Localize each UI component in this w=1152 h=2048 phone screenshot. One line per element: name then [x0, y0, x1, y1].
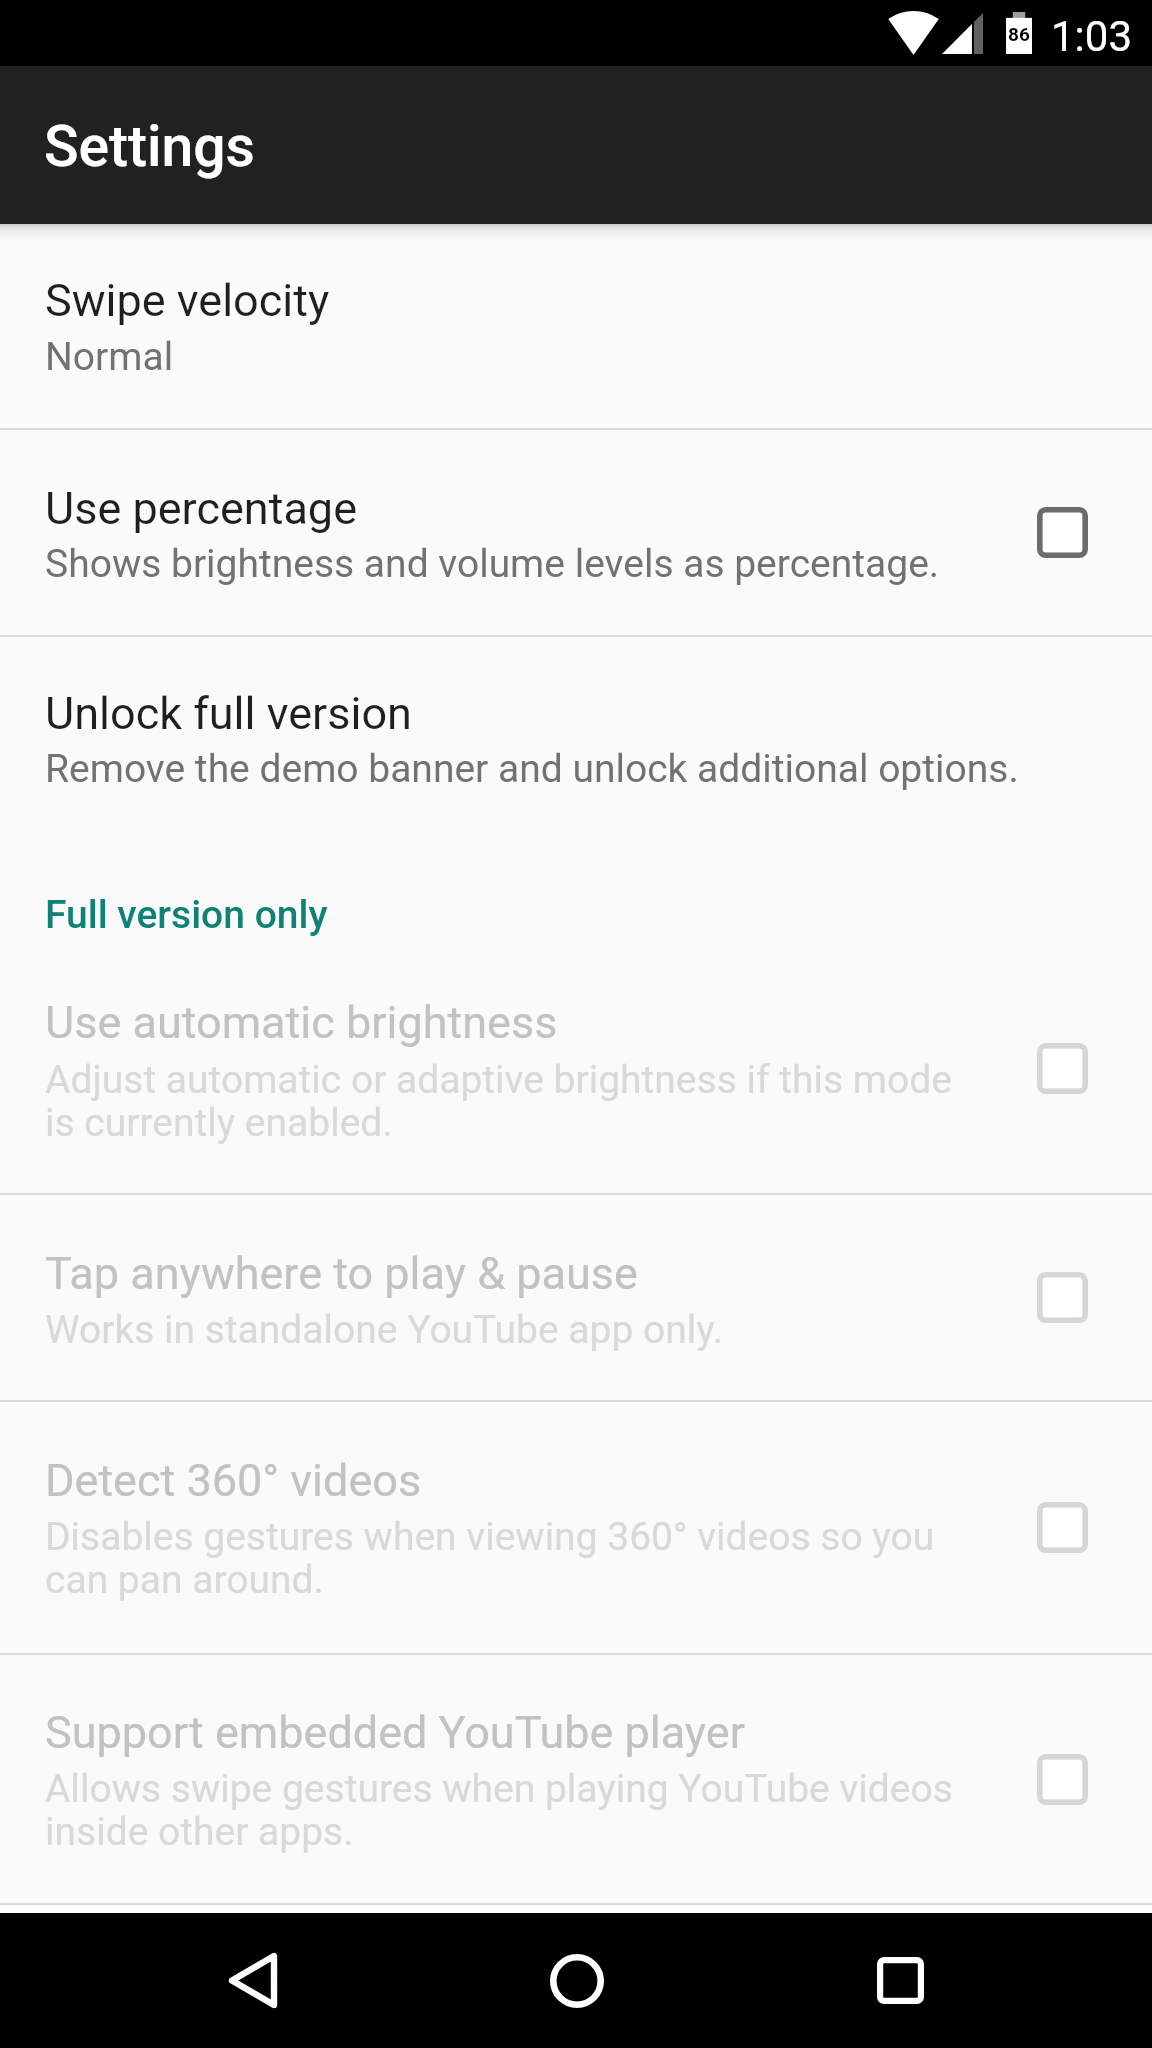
staticText: Use automatic brightness — [45, 993, 965, 1050]
staticText: Normal — [45, 336, 1005, 379]
staticText: Shows brightness and volume levels as pe… — [45, 543, 1005, 586]
staticText: 1:03 — [1051, 12, 1132, 61]
staticText: Disables gestures when viewing 360° vide… — [45, 1516, 1005, 1602]
button[interactable]: Swipe velocity — [0, 224, 1152, 428]
staticText: Support embedded YouTube player — [45, 1703, 1015, 1760]
button[interactable]: Tap anywhere to play & pause — [0, 1195, 1152, 1400]
button[interactable]: Back — [174, 1913, 334, 2048]
button[interactable]: Use automatic brightness — [0, 944, 1152, 1193]
staticText: Detect 360° videos — [45, 1451, 1005, 1508]
staticText: 86 — [1008, 23, 1030, 45]
button[interactable]: Home — [497, 1913, 657, 2048]
staticText: Remove the demo banner and unlock additi… — [45, 748, 1105, 791]
staticText: Adjust automatic or adaptive brightness … — [45, 1059, 965, 1145]
staticText: Use percentage — [45, 479, 1005, 536]
staticText: Allows swipe gestures when playing YouTu… — [45, 1768, 1015, 1854]
staticText: Unlock full version — [45, 684, 1105, 741]
staticText: Works in standalone YouTube app only. — [45, 1309, 1005, 1352]
button[interactable]: Detect 360° videos — [0, 1402, 1152, 1653]
button[interactable]: Use percentage — [0, 430, 1152, 635]
staticText: Full version only — [45, 892, 328, 938]
button[interactable]: Support embedded YouTube player — [0, 1655, 1152, 1903]
staticText: Tap anywhere to play & pause — [45, 1244, 1005, 1301]
button[interactable]: Recent apps — [820, 1913, 980, 2048]
staticText: Swipe velocity — [45, 271, 1005, 328]
staticText: Settings — [44, 113, 255, 180]
button[interactable]: Unlock full version — [0, 637, 1152, 842]
